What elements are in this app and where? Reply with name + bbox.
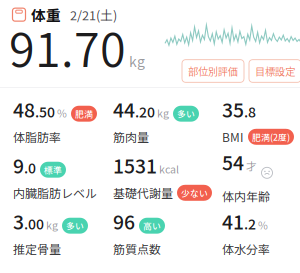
staticText: 内臓脂肪レベル [13,184,97,201]
staticText: 44 [113,95,135,123]
staticText: 35 [222,95,244,123]
staticText: kg [126,51,145,71]
staticText: 54 [222,148,244,176]
staticText: 9 [13,151,24,179]
staticText: 才 [244,158,257,173]
staticText: 少ない [181,186,208,199]
staticText: 筋質点数 [113,240,161,257]
staticText: % [256,217,268,233]
staticText: .50 [35,101,55,122]
staticText: 体脂肪率 [13,128,61,145]
staticText: .20 [135,101,155,122]
staticText: % [55,105,67,121]
staticText: 体内年齢 [222,187,270,205]
staticText: 2/21(土) [70,5,117,24]
staticText: 96 [113,207,135,235]
staticText: 標準 [44,163,62,176]
staticText: .8 [244,101,256,122]
staticText: kcal [157,161,179,177]
staticText: 部位別評価 [188,64,238,78]
staticText: .00 [24,213,44,234]
staticText: 体重 [31,4,61,25]
staticText: 筋肉量 [113,128,149,145]
staticText: BMI [222,128,244,145]
staticText: 目標設定 [255,64,295,78]
staticText: 肥満 [75,107,93,120]
staticText: 多い [66,219,84,232]
staticText: 高い [143,219,161,232]
staticText: 91.70 [9,13,126,80]
staticText: 推定骨量 [13,240,61,257]
staticText: .2 [244,213,256,234]
staticText: 多い [177,107,195,120]
staticText: 1531 [113,151,157,179]
staticText: 肥満(2度) [252,130,290,143]
button[interactable]: 部位別評価 [182,60,244,82]
staticText: 3 [13,207,24,235]
staticText: 基礎代謝量 [113,184,173,201]
staticText: kg [155,105,169,121]
staticText: 41 [222,207,244,235]
staticText: kg [44,217,58,233]
staticText: 48 [13,95,35,123]
staticText: .0 [24,157,36,178]
staticText: 体水分率 [222,240,270,257]
button[interactable]: 目標設定 [249,60,300,82]
